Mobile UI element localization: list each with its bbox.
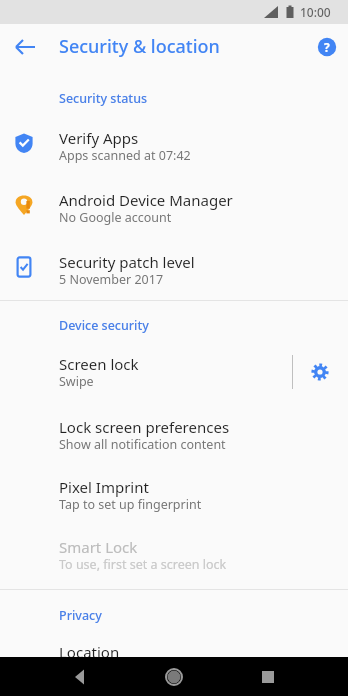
button[interactable]: Back	[10, 31, 42, 63]
staticText: To use, first set a screen lock	[59, 556, 227, 573]
staticText: ?	[324, 39, 330, 55]
button[interactable]: Back	[62, 659, 98, 695]
button[interactable]: Recent apps	[250, 659, 286, 695]
staticText: Android Device Manager	[59, 190, 233, 210]
staticText: No Google account	[59, 209, 172, 226]
staticText: Tap to set up fingerprint	[59, 496, 202, 513]
staticText: Show all notification content	[59, 436, 226, 453]
staticText: Pixel Imprint	[59, 477, 149, 497]
staticText: 10:00	[300, 4, 331, 20]
button[interactable]: Screen lock settings	[306, 358, 334, 386]
staticText: Apps scanned at 07:42	[59, 147, 191, 164]
staticText: Security status	[59, 90, 148, 107]
staticText: Smart Lock	[59, 537, 138, 557]
staticText: 5 November 2017	[59, 271, 164, 288]
staticText: Device security	[59, 317, 149, 334]
button[interactable]: Screen lock	[0, 352, 348, 394]
button[interactable]: Location	[0, 640, 348, 670]
staticText: Lock screen preferences	[59, 417, 230, 437]
staticText: Verify Apps	[59, 128, 139, 148]
button[interactable]: Security patch level	[0, 250, 348, 300]
staticText: Privacy	[59, 607, 102, 624]
button[interactable]: Smart Lock	[0, 535, 348, 581]
staticText: Security patch level	[59, 252, 195, 272]
button[interactable]: Home	[156, 659, 192, 695]
staticText: Location	[59, 642, 120, 662]
button[interactable]: Lock screen preferences	[0, 415, 348, 461]
staticText: Screen lock	[59, 354, 139, 374]
staticText: Security & location	[59, 34, 220, 59]
button[interactable]: Help	[313, 33, 341, 61]
button[interactable]: Pixel Imprint	[0, 475, 348, 521]
button[interactable]: Verify Apps	[0, 126, 348, 176]
button[interactable]: Android Device Manager	[0, 188, 348, 238]
staticText: Swipe	[59, 373, 94, 390]
